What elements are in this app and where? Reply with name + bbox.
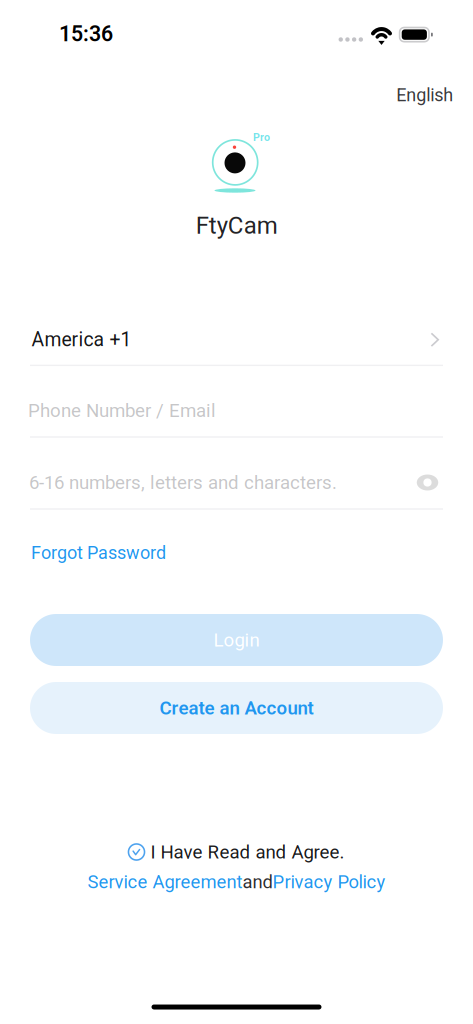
staticText: FtyCam — [196, 211, 278, 239]
staticText: America +1 — [31, 328, 131, 351]
button[interactable]: English — [386, 78, 463, 113]
button[interactable]: Privacy Policy — [272, 871, 385, 893]
staticText: and — [242, 871, 272, 893]
staticText: Service Agreement — [87, 871, 242, 893]
button[interactable]: Forgot Password — [29, 536, 168, 569]
staticText: 6-16 numbers, letters and characters. — [29, 472, 337, 493]
button[interactable]: Show password — [410, 467, 445, 497]
staticText: Privacy Policy — [272, 871, 385, 893]
button[interactable]: Create an Account — [30, 682, 443, 734]
staticText: Login — [213, 629, 259, 651]
staticText: 15:36 — [59, 21, 113, 46]
button[interactable]: Service Agreement — [87, 871, 242, 893]
staticText: Forgot Password — [31, 542, 166, 563]
button[interactable]: America +1 — [30, 314, 443, 366]
staticText: Phone Number / Email — [28, 400, 216, 421]
staticText: I Have Read and Agree. — [150, 841, 344, 863]
button[interactable]: Login — [30, 614, 443, 666]
staticText: English — [396, 85, 453, 106]
staticText: Create an Account — [159, 697, 313, 719]
staticText: Pro — [253, 131, 270, 143]
button[interactable]: I Have Read and Agree. — [128, 838, 344, 866]
